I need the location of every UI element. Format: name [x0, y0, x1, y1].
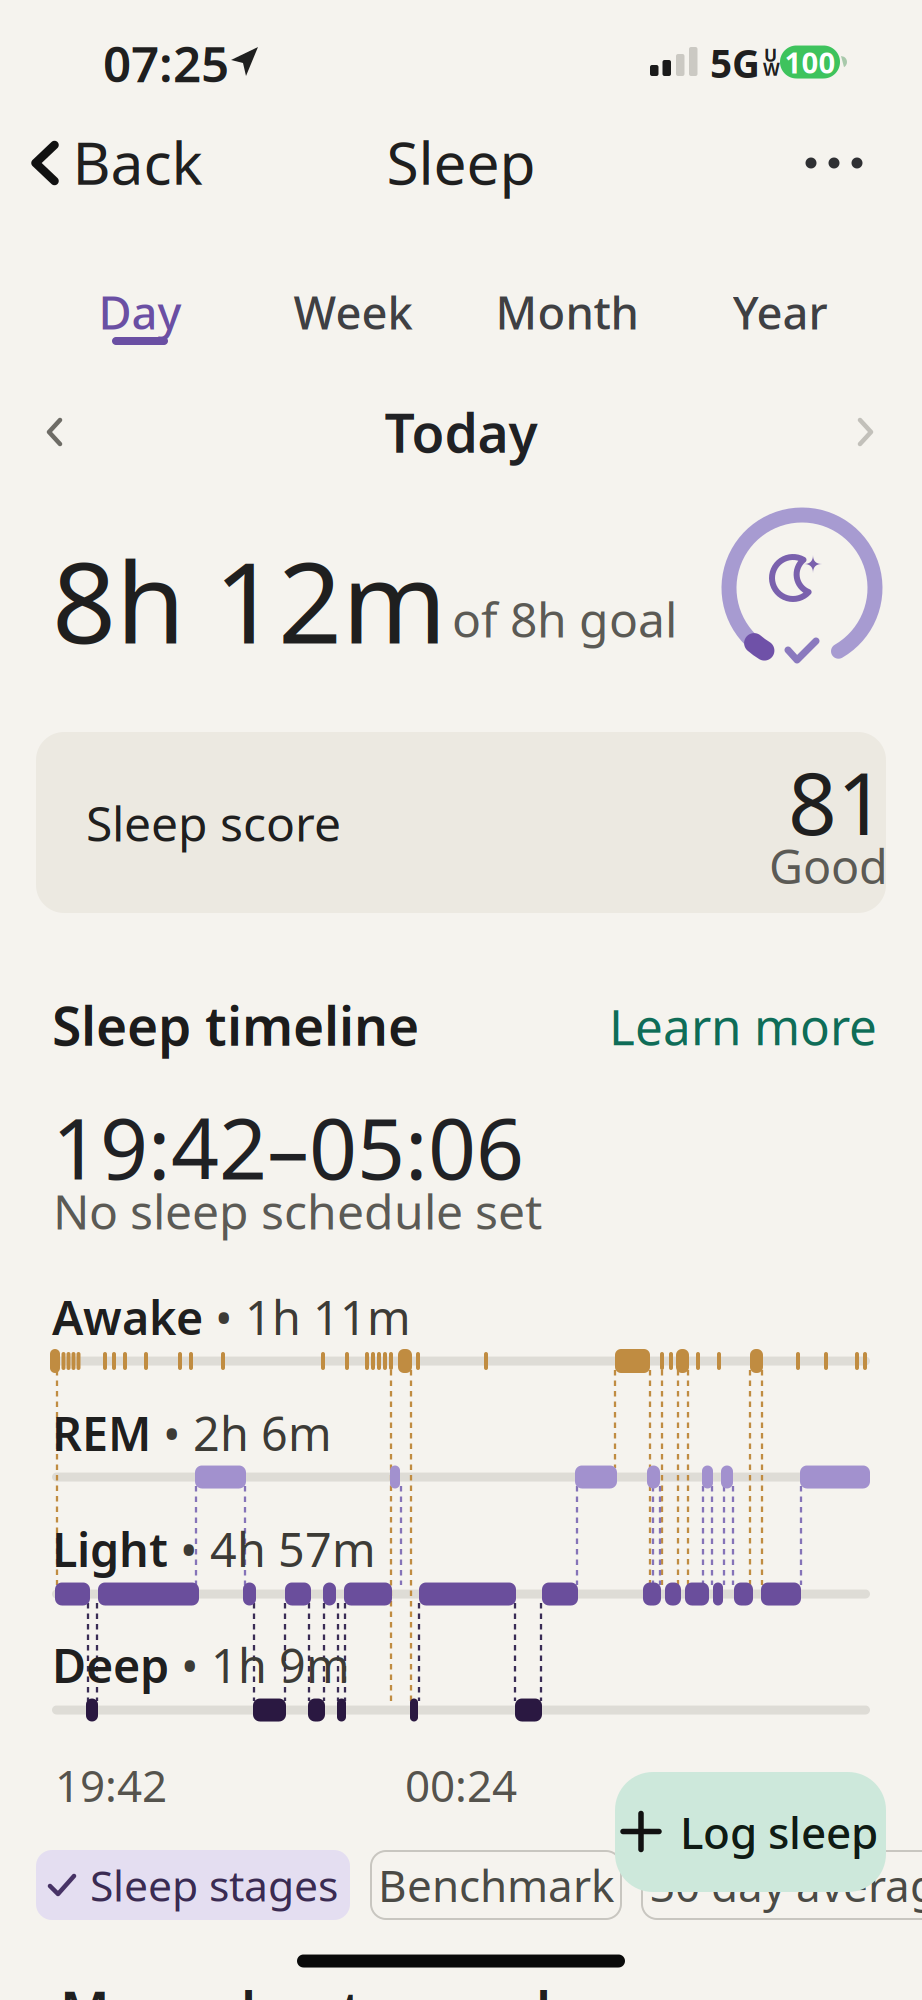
staticText: Good	[769, 835, 888, 897]
staticText: Sleep timeline	[52, 990, 419, 1060]
button[interactable]: Learn more	[577, 993, 877, 1059]
staticText: 19:42–05:06	[52, 1091, 524, 1203]
button[interactable]: Day	[34, 288, 246, 348]
button[interactable]: Sleep stages	[36, 1850, 350, 1920]
button[interactable]: 30 day average	[641, 1850, 922, 1920]
button[interactable]: Next day	[836, 410, 880, 454]
staticText: Log sleep	[680, 1803, 878, 1861]
staticText: 30 day average	[650, 1856, 922, 1914]
staticText: Learn more	[609, 993, 877, 1059]
button[interactable]: Year	[674, 288, 886, 348]
staticText: 100	[784, 42, 835, 81]
staticText: Benchmark	[378, 1856, 614, 1914]
staticText: • 1h 9m	[169, 1634, 350, 1696]
staticText: • 4h 57m	[168, 1518, 376, 1580]
staticText: Back	[72, 123, 202, 201]
staticText: • 1h 11m	[203, 1286, 411, 1348]
button[interactable]: Benchmark	[370, 1850, 622, 1920]
button[interactable]: Month	[461, 288, 673, 348]
staticText: Year	[732, 282, 827, 342]
staticText: 8h 12m	[52, 526, 447, 674]
staticText: More about your sleep	[60, 1975, 646, 2000]
staticText: 81	[788, 745, 886, 859]
button[interactable]: Back	[30, 141, 195, 185]
staticText: No sleep schedule set	[53, 1179, 542, 1243]
staticText: Sleep score	[86, 791, 341, 855]
button[interactable]: Week	[247, 288, 459, 348]
button[interactable]: Log sleep	[615, 1772, 886, 1892]
staticText: Week	[293, 282, 412, 342]
staticText: Today	[384, 397, 537, 467]
staticText: Month	[495, 282, 638, 342]
staticText: Sleep	[386, 123, 535, 201]
button[interactable]: More	[794, 141, 874, 185]
staticText: Deep	[52, 1634, 169, 1696]
staticText: U	[764, 43, 777, 66]
staticText: 19:42	[55, 1756, 167, 1814]
staticText: REM	[52, 1402, 151, 1464]
button[interactable]: Previous day	[40, 410, 84, 454]
staticText: Awake	[52, 1286, 203, 1348]
staticText: Day	[98, 282, 181, 342]
button[interactable]: Sleep score	[36, 732, 886, 913]
staticText: • 2h 6m	[151, 1402, 332, 1464]
staticText: Light	[52, 1518, 168, 1580]
staticText: 5G	[710, 37, 760, 89]
staticText: W	[763, 57, 780, 80]
staticText: Sleep stages	[90, 1857, 338, 1913]
staticText: of 8h goal	[452, 587, 677, 651]
staticText: 07:25	[103, 30, 229, 96]
staticText: 00:24	[405, 1756, 517, 1814]
